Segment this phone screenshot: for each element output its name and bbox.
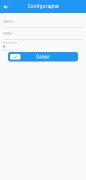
staticText: 0 — [3, 45, 5, 49]
button[interactable]: Back — [0, 0, 13, 13]
staticText: Tipo Impressora — [3, 41, 17, 44]
staticText: Senha — [3, 32, 12, 35]
staticText: Usuário — [3, 20, 14, 23]
staticText: Configurações — [27, 4, 58, 9]
button[interactable]: Salvar — [0, 52, 86, 61]
staticText: Salvar — [36, 54, 50, 59]
